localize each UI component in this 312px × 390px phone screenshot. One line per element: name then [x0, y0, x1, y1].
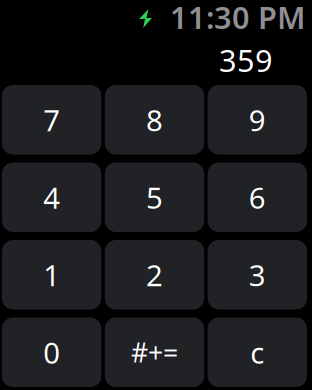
staticText: 7	[43, 100, 60, 139]
staticText: c	[250, 333, 264, 372]
button[interactable]: 3	[208, 240, 307, 309]
staticText: 11:30 PM	[170, 0, 305, 37]
button[interactable]: 0	[2, 317, 101, 387]
button[interactable]: 2	[105, 240, 204, 309]
staticText: 1	[43, 255, 60, 294]
staticText: 9	[249, 100, 266, 139]
button[interactable]: c	[208, 317, 307, 387]
staticText: 2	[146, 255, 163, 294]
staticText: 6	[249, 178, 266, 217]
button[interactable]: 9	[208, 85, 307, 154]
staticText: #+=	[131, 334, 178, 370]
staticText: 0	[43, 333, 60, 372]
button[interactable]: #+=	[105, 317, 204, 387]
button[interactable]: 6	[208, 162, 307, 232]
staticText: 4	[43, 178, 60, 217]
staticText: 359	[219, 40, 273, 80]
button[interactable]: 1	[2, 240, 101, 309]
button[interactable]: 5	[105, 162, 204, 232]
staticText: 3	[249, 255, 266, 294]
staticText: 8	[146, 100, 163, 139]
button[interactable]: 8	[105, 85, 204, 154]
button[interactable]: 4	[2, 162, 101, 232]
button[interactable]: 7	[2, 85, 101, 154]
staticText: 5	[146, 178, 163, 217]
